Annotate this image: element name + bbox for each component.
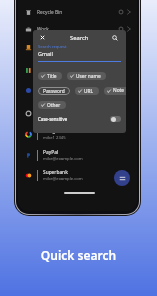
button[interactable]: Password <box>38 87 70 95</box>
staticText: Search request <box>38 44 67 49</box>
staticText: Search <box>70 34 89 42</box>
staticText: Password <box>43 88 65 95</box>
staticText: Work <box>37 26 49 33</box>
button[interactable]: Recycle Bin <box>24 4 134 20</box>
button[interactable]: Title <box>38 72 62 80</box>
staticText: Case-sensitive <box>38 116 68 122</box>
staticText: Superbank <box>43 169 68 176</box>
staticText: PayPal <box>43 149 59 156</box>
staticText: User name <box>76 73 101 80</box>
staticText: URL <box>84 88 94 95</box>
button[interactable]: Sort <box>114 170 130 186</box>
button[interactable]: Google <box>24 126 134 142</box>
button[interactable]: Notes <box>104 87 126 95</box>
staticText: Notes <box>113 87 126 95</box>
staticText: GitHub <box>43 107 60 114</box>
staticText: Title <box>47 73 57 80</box>
staticText: Gmail <box>38 50 53 57</box>
staticText: mike@example.com <box>43 71 83 77</box>
staticText: mike1 2345 <box>43 135 66 141</box>
button[interactable]: Kickstarter <box>24 62 134 78</box>
button[interactable]: Work <box>24 21 134 37</box>
button[interactable]: Superbank <box>24 167 134 183</box>
button[interactable]: Other <box>38 101 66 109</box>
button[interactable]: URL <box>75 87 99 95</box>
staticText: Quick search <box>0 247 157 263</box>
button[interactable]: GitHub <box>24 105 134 121</box>
staticText: mike@example.com <box>43 176 83 182</box>
staticText: Other <box>47 102 61 109</box>
staticText: mike@example.com <box>43 48 83 54</box>
staticText: mike@example.com <box>43 91 83 97</box>
staticText: Twitter <box>43 84 60 91</box>
staticText: Google <box>43 128 60 135</box>
staticText: mike@example.com <box>43 156 83 162</box>
button[interactable]: PayPal <box>24 147 134 163</box>
button[interactable]: User name <box>67 72 106 80</box>
staticText: Amazon <box>43 41 62 48</box>
button[interactable]: Amazon <box>24 39 134 55</box>
button[interactable]: Close <box>37 32 48 43</box>
button[interactable]: Search <box>109 32 120 43</box>
staticText: mike@example.com <box>43 114 83 120</box>
staticText: Recycle Bin <box>37 9 63 16</box>
button[interactable] <box>110 116 121 122</box>
button[interactable]: Twitter <box>24 82 134 98</box>
